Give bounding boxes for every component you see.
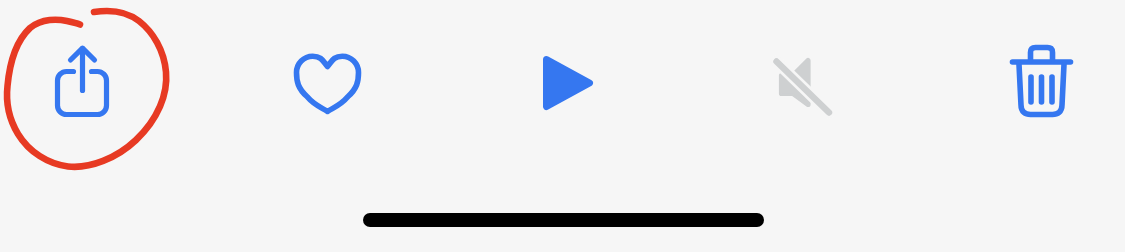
button[interactable]: Share (26, 26, 138, 138)
button[interactable]: Favorite (271, 26, 383, 138)
button[interactable]: Unmute (744, 26, 856, 138)
button[interactable]: Delete (985, 26, 1097, 138)
button[interactable]: Play (509, 26, 621, 138)
